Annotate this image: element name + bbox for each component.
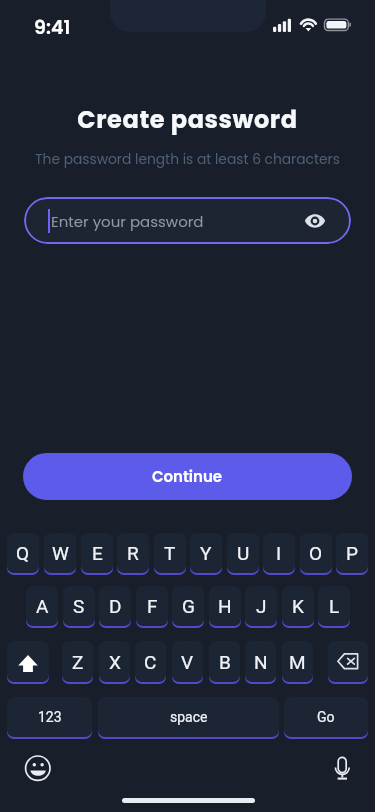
staticText: V xyxy=(181,651,194,673)
staticText: X xyxy=(109,651,121,673)
button[interactable]: Y xyxy=(190,533,222,576)
staticText: L xyxy=(329,595,340,617)
staticText: N xyxy=(254,651,268,673)
button[interactable]: L xyxy=(318,586,350,629)
staticText: Z xyxy=(72,651,84,673)
button[interactable]: Q xyxy=(7,533,39,576)
button[interactable]: F xyxy=(136,586,168,629)
button[interactable]: B xyxy=(209,641,240,684)
button[interactable]: S xyxy=(63,586,95,629)
staticText: C xyxy=(144,651,157,673)
button[interactable]: D xyxy=(99,586,131,629)
staticText: P xyxy=(346,542,358,564)
staticText: 9:41 xyxy=(34,14,71,41)
staticText: Create password xyxy=(0,103,375,137)
staticText: Enter your password xyxy=(51,211,303,232)
button[interactable]: O xyxy=(300,533,332,576)
button[interactable]: X xyxy=(99,641,130,684)
button[interactable]: N xyxy=(245,641,276,684)
staticText: Q xyxy=(16,542,30,564)
staticText: 123 xyxy=(38,709,62,725)
button[interactable]: W xyxy=(44,533,76,576)
staticText: W xyxy=(52,542,69,564)
staticText: Go xyxy=(317,709,335,725)
button[interactable] xyxy=(7,641,49,684)
button[interactable]: A xyxy=(26,586,58,629)
staticText: M xyxy=(289,651,306,673)
button[interactable]: Continue xyxy=(23,453,352,500)
staticText: R xyxy=(127,542,139,564)
button[interactable]: U xyxy=(227,533,259,576)
staticText: F xyxy=(147,595,158,617)
staticText: H xyxy=(218,595,232,617)
button[interactable]: E xyxy=(81,533,113,576)
button[interactable]: I xyxy=(263,533,295,576)
staticText: G xyxy=(182,595,195,617)
staticText: space xyxy=(170,709,208,725)
staticText: S xyxy=(73,595,85,617)
staticText: The password length is at least 6 charac… xyxy=(0,150,375,169)
staticText: U xyxy=(237,542,250,564)
button[interactable]: P xyxy=(336,533,368,576)
button[interactable]: H xyxy=(209,586,241,629)
staticText: I xyxy=(276,542,282,564)
button[interactable]: C xyxy=(135,641,166,684)
button[interactable] xyxy=(328,641,368,684)
button[interactable]: Enter your password xyxy=(24,197,351,244)
button[interactable]: G xyxy=(172,586,204,629)
staticText: A xyxy=(36,595,49,617)
button[interactable]: Z xyxy=(62,641,93,684)
button[interactable]: V xyxy=(172,641,203,684)
button[interactable]: J xyxy=(245,586,277,629)
button[interactable]: T xyxy=(154,533,186,576)
button[interactable]: space xyxy=(98,697,279,739)
staticText: T xyxy=(164,542,176,564)
staticText: E xyxy=(92,542,103,564)
button[interactable]: K xyxy=(282,586,314,629)
button[interactable]: Show password xyxy=(303,209,327,233)
staticText: Continue xyxy=(152,466,223,487)
staticText: K xyxy=(292,595,304,617)
button[interactable]: Emoji keyboard xyxy=(21,751,55,785)
button[interactable]: M xyxy=(282,641,313,684)
staticText: J xyxy=(256,595,267,617)
button[interactable]: Go xyxy=(284,697,368,739)
button[interactable]: R xyxy=(117,533,149,576)
staticText: O xyxy=(309,542,323,564)
button[interactable]: 123 xyxy=(7,697,92,739)
button[interactable]: Voice input xyxy=(330,751,360,781)
staticText: B xyxy=(219,651,231,673)
staticText: Y xyxy=(200,542,212,564)
staticText: D xyxy=(109,595,122,617)
